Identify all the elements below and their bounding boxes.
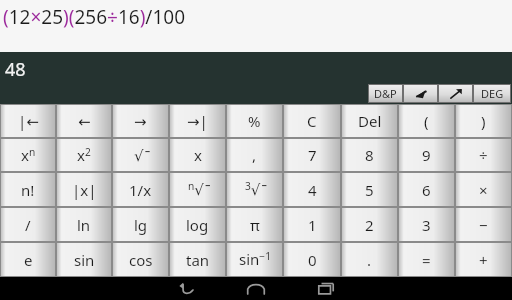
button[interactable]: 3 (398, 207, 455, 242)
button[interactable]: . (341, 242, 398, 277)
staticText: 4 (308, 180, 317, 200)
staticText: − (479, 215, 488, 235)
button[interactable]: ← (56, 104, 112, 138)
staticText: π (250, 215, 260, 235)
button[interactable]: × (455, 172, 512, 207)
staticText: DEG (481, 86, 504, 101)
button[interactable]: D&P (368, 84, 403, 103)
staticText: , (252, 145, 257, 165)
button[interactable]: , (226, 138, 283, 172)
button[interactable]: Del (341, 104, 398, 138)
button[interactable]: Move cursor right (438, 84, 473, 103)
button[interactable]: C (283, 104, 341, 138)
staticText: C (307, 111, 317, 131)
staticText: ← (78, 113, 91, 130)
staticText: → (134, 113, 147, 130)
button[interactable]: 3√ ̄ (226, 172, 283, 207)
button[interactable]: n! (0, 172, 56, 207)
staticText: |x| (72, 180, 97, 200)
button[interactable]: 1/x (112, 172, 169, 207)
staticText: 3 (422, 215, 431, 235)
button[interactable]: 5 (341, 172, 398, 207)
button[interactable]: log (169, 207, 226, 242)
staticText: sin−1 (239, 249, 271, 270)
button[interactable]: →| (169, 104, 226, 138)
staticText: / (25, 215, 31, 235)
button[interactable]: 1 (283, 207, 341, 242)
button[interactable]: π (226, 207, 283, 242)
staticText: (12×25)(256÷16)/100 (3, 4, 186, 30)
staticText: 0 (308, 250, 317, 270)
button[interactable]: e (0, 242, 56, 277)
button[interactable]: |← (0, 104, 56, 138)
staticText: 6 (422, 180, 431, 200)
button[interactable]: Recent apps (291, 277, 361, 300)
button[interactable]: x2 (56, 138, 112, 172)
button[interactable]: n√ ̄ (169, 172, 226, 207)
button[interactable]: Move cursor left (403, 84, 438, 103)
button[interactable]: + (455, 242, 512, 277)
button[interactable]: (12×25)(256÷16)/100 (0, 0, 512, 52)
button[interactable]: 9 (398, 138, 455, 172)
staticText: 1 (308, 215, 317, 235)
staticText: ÷ (479, 145, 488, 165)
button[interactable]: 2 (341, 207, 398, 242)
staticText: cos (129, 250, 153, 270)
staticText: 7 (308, 145, 317, 165)
button[interactable]: sin−1 (226, 242, 283, 277)
staticText: √ ̄ (134, 145, 148, 165)
button[interactable]: / (0, 207, 56, 242)
staticText: e (24, 250, 33, 270)
button[interactable]: 8 (341, 138, 398, 172)
staticText: ln (77, 215, 91, 235)
staticText: Del (358, 111, 382, 131)
button[interactable]: DEG (473, 84, 511, 103)
staticText: + (479, 250, 488, 270)
button[interactable]: Home (221, 277, 291, 300)
staticText: D&P (374, 86, 397, 101)
staticText: |← (18, 111, 39, 131)
button[interactable]: |x| (56, 172, 112, 207)
button[interactable]: x (169, 138, 226, 172)
button[interactable]: ln (56, 207, 112, 242)
button[interactable]: cos (112, 242, 169, 277)
staticText: ) (481, 111, 486, 131)
button[interactable]: = (398, 242, 455, 277)
staticText: ( (424, 111, 429, 131)
staticText: tan (186, 250, 210, 270)
staticText: lg (134, 215, 148, 235)
staticText: 1/x (129, 180, 152, 200)
staticText: 8 (365, 145, 374, 165)
button[interactable]: tan (169, 242, 226, 277)
button[interactable]: 4 (283, 172, 341, 207)
staticText: . (367, 250, 372, 270)
button[interactable]: ) (455, 104, 512, 138)
staticText: × (479, 180, 488, 200)
button[interactable]: 0 (283, 242, 341, 277)
button[interactable]: % (226, 104, 283, 138)
button[interactable]: 7 (283, 138, 341, 172)
staticText: 5 (365, 180, 374, 200)
staticText: 3√ ̄ (245, 179, 265, 200)
staticText: % (248, 111, 261, 131)
button[interactable]: ÷ (455, 138, 512, 172)
button[interactable]: sin (56, 242, 112, 277)
button[interactable]: → (112, 104, 169, 138)
staticText: n! (21, 180, 35, 200)
button[interactable]: lg (112, 207, 169, 242)
button[interactable]: − (455, 207, 512, 242)
button[interactable]: √ ̄ (112, 138, 169, 172)
staticText: x (194, 145, 202, 165)
button[interactable]: xn (0, 138, 56, 172)
button[interactable]: Back (151, 277, 221, 300)
button[interactable]: ( (398, 104, 455, 138)
staticText: sin (74, 250, 95, 270)
staticText: log (186, 215, 209, 235)
staticText: n√ ̄ (188, 179, 208, 200)
staticText: 48 (5, 57, 26, 82)
staticText: x2 (77, 145, 91, 166)
staticText: = (422, 250, 431, 270)
button[interactable]: 6 (398, 172, 455, 207)
staticText: xn (21, 145, 36, 166)
staticText: →| (187, 111, 208, 131)
